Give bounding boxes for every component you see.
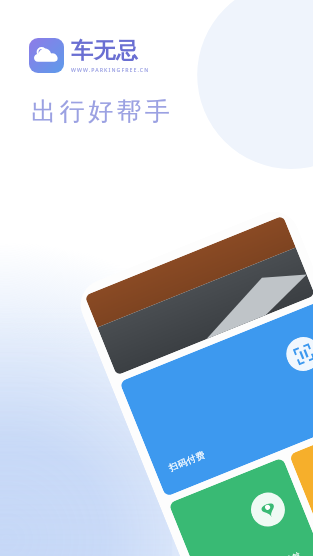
staticText: 扫码付费 (167, 448, 207, 473)
staticText: 车无忌 (71, 37, 139, 65)
button[interactable]: 车无忌 ParkingFree logo (29, 37, 150, 73)
button[interactable]: 停车 | 找停车位 | 导航 (168, 457, 313, 556)
staticText: 停车 | 找停车位 | 导航 (215, 549, 303, 556)
button[interactable]: 扫码付费 (119, 302, 313, 497)
button[interactable]: Parking banner photo (84, 216, 313, 375)
staticText: WWW.PARKINGFREE.CN (71, 66, 150, 73)
staticText: 出行好帮手 (31, 96, 174, 127)
button[interactable]: Service (289, 423, 313, 556)
